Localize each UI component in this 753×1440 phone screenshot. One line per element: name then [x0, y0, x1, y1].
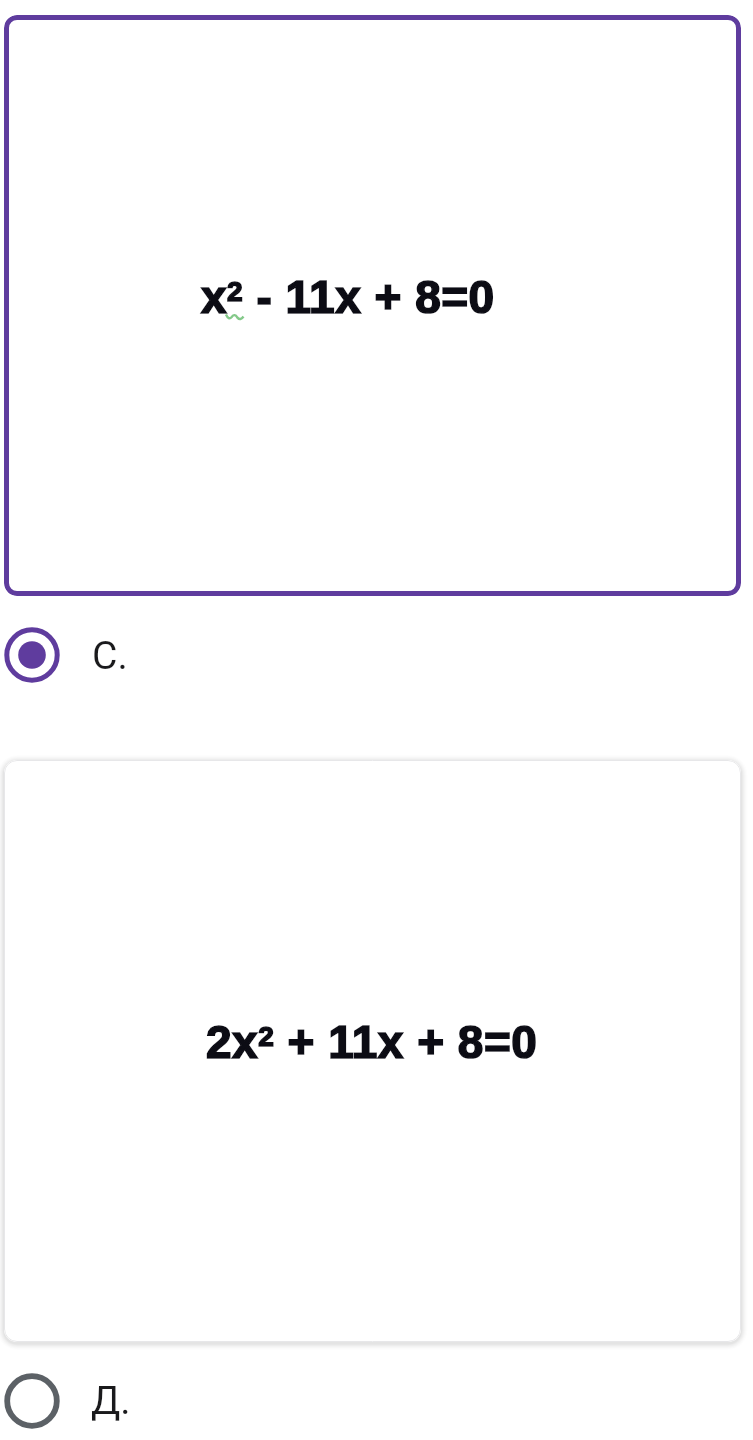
other: Selected radio button	[4, 627, 60, 683]
staticText: x2 - 11x + 8=0	[201, 271, 495, 322]
staticText: 2x2 + 11x + 8=0	[206, 1016, 538, 1067]
button[interactable]: Answer Д.	[4, 1361, 749, 1440]
button[interactable]: Answer C., selected	[4, 615, 749, 695]
staticText: x2 - 11x + 8=0	[201, 271, 495, 322]
button[interactable]: x2 - 11x + 8=0	[4, 15, 741, 596]
button[interactable]: 2x2 + 11x + 8=0	[4, 760, 741, 1342]
staticText: 2x2 + 11x + 8=0	[206, 1016, 538, 1067]
staticText: Д.	[91, 1378, 131, 1424]
other: Radio button	[4, 1373, 60, 1429]
staticText: C.	[92, 633, 128, 679]
